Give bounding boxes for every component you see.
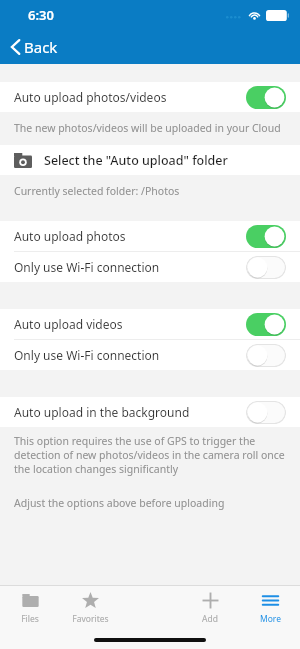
- button[interactable]: [246, 401, 286, 424]
- button[interactable]: Files: [0, 586, 60, 630]
- button[interactable]: Auto upload photos/videos: [0, 82, 300, 112]
- staticText: Auto upload photos/videos: [14, 89, 246, 105]
- staticText: Favorites: [72, 613, 109, 625]
- staticText: Select the "Auto upload" folder: [44, 152, 228, 169]
- staticText: The new photos/videos will be uploaded i…: [14, 121, 281, 135]
- button[interactable]: Add: [180, 586, 240, 630]
- staticText: Add: [202, 613, 218, 625]
- button[interactable]: [246, 256, 286, 279]
- button[interactable]: Auto upload in the background: [0, 397, 300, 427]
- button[interactable]: Auto upload photos: [0, 221, 300, 251]
- staticText: Files: [21, 613, 39, 625]
- button[interactable]: [246, 225, 286, 248]
- button[interactable]: [246, 344, 286, 367]
- button[interactable]: [246, 86, 286, 109]
- staticText: Back: [24, 37, 58, 57]
- button[interactable]: Only use Wi-Fi connection: [0, 340, 300, 370]
- button[interactable]: Back: [5, 32, 64, 62]
- button[interactable]: Only use Wi-Fi connection: [0, 252, 300, 282]
- staticText: 6:30: [28, 6, 54, 24]
- staticText: More: [260, 613, 281, 625]
- staticText: Auto upload videos: [14, 316, 246, 332]
- staticText: Currently selected folder: /Photos: [14, 184, 180, 198]
- staticText: Auto upload photos: [14, 228, 246, 244]
- staticText: This option requires the use of GPS to t…: [14, 434, 286, 476]
- staticText: Only use Wi-Fi connection: [14, 259, 246, 275]
- button[interactable]: [246, 313, 286, 336]
- staticText: Adjust the options above before uploadin…: [14, 496, 225, 510]
- button[interactable]: More: [240, 586, 300, 630]
- button[interactable]: Select the "Auto upload" folder: [0, 145, 300, 175]
- staticText: Only use Wi-Fi connection: [14, 347, 246, 363]
- staticText: Auto upload in the background: [14, 404, 246, 420]
- button[interactable]: Auto upload videos: [0, 309, 300, 339]
- button[interactable]: Favorites: [60, 586, 120, 630]
